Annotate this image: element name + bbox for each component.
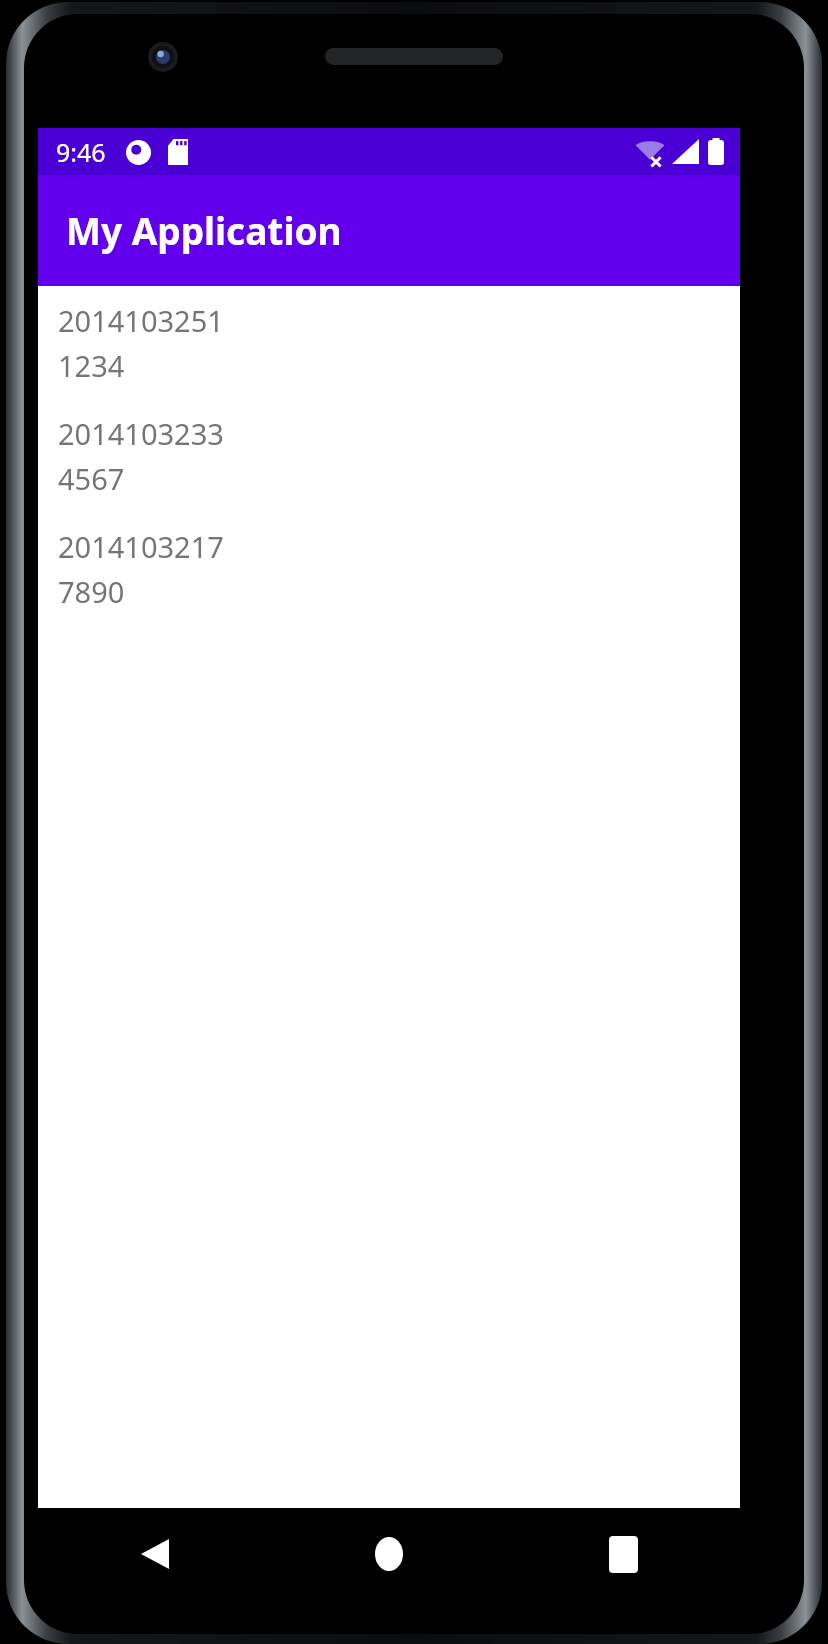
button[interactable]: 2014103251: [38, 294, 740, 407]
button[interactable]: Back: [38, 1508, 272, 1600]
button[interactable]: 2014103233: [38, 407, 740, 520]
staticText: 2014103217: [58, 527, 224, 566]
button[interactable]: My Application: [38, 175, 740, 286]
button[interactable]: 2014103217: [38, 520, 740, 633]
staticText: 2014103233: [58, 414, 224, 453]
staticText: 9:46: [56, 135, 106, 169]
staticText: 7890: [58, 572, 125, 611]
button[interactable]: Home: [272, 1508, 506, 1600]
staticText: My Application: [66, 205, 342, 255]
button[interactable]: Recent apps: [506, 1508, 740, 1600]
staticText: 2014103251: [58, 301, 224, 340]
staticText: 4567: [58, 459, 125, 498]
staticText: 1234: [58, 346, 125, 385]
